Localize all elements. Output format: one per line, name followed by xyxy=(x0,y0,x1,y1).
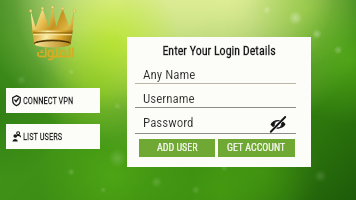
staticText: Any Name xyxy=(143,67,196,82)
button[interactable]: GET ACCOUNT xyxy=(218,139,295,157)
staticText: GET ACCOUNT xyxy=(227,142,286,154)
staticText: Username xyxy=(143,91,195,106)
button[interactable]: LIST USERS xyxy=(6,124,100,149)
staticText: الملوك xyxy=(37,40,75,64)
button[interactable]: ADD USER xyxy=(139,139,215,157)
staticText: ADD USER xyxy=(157,142,198,154)
staticText: Enter Your Login Details xyxy=(127,44,311,58)
button[interactable]: Toggle password visibility xyxy=(269,115,287,133)
staticText: Password xyxy=(143,115,194,130)
button[interactable]: CONNECT VPN xyxy=(6,88,100,113)
staticText: CONNECT VPN xyxy=(23,96,74,106)
staticText: LIST USERS xyxy=(23,132,63,142)
